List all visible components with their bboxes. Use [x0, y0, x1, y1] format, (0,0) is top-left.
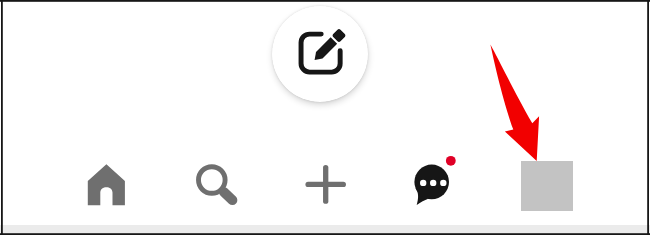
button[interactable]: Home — [82, 156, 138, 210]
button[interactable]: Compose new message — [272, 6, 368, 102]
button[interactable]: Search — [186, 156, 242, 210]
button[interactable]: Messages — [404, 152, 466, 210]
button[interactable]: Create new post — [298, 156, 354, 210]
